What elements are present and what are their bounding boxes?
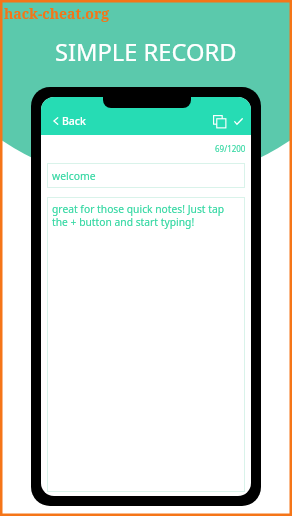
button[interactable]: Copy [208, 108, 230, 134]
button[interactable]: Back [53, 106, 86, 135]
staticText: Back [62, 114, 86, 128]
staticText: great for those quick notes! Just tap th… [52, 202, 225, 229]
staticText: SIMPLE RECORD [55, 36, 237, 68]
staticText: welcome [52, 169, 96, 183]
staticText: hack-cheat.org [4, 4, 110, 23]
staticText: 69/1200 [215, 143, 246, 154]
button[interactable]: great for those quick notes! Just tap th… [47, 197, 245, 492]
button[interactable]: welcome [47, 163, 245, 188]
button[interactable]: Done [230, 108, 247, 134]
